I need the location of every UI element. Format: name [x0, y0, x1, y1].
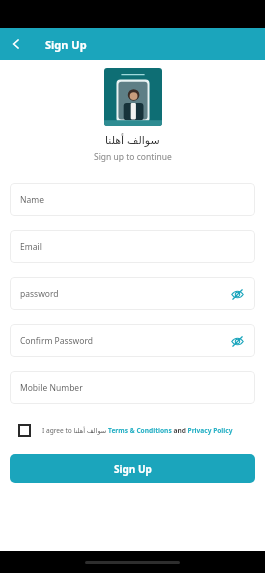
staticText: Sign Up	[45, 37, 87, 52]
button[interactable]: Agree to terms	[14, 420, 34, 440]
button[interactable]: Mobile Number	[10, 371, 255, 404]
staticText: Confirm Password	[20, 335, 93, 347]
button[interactable]: password	[10, 277, 255, 310]
staticText: Mobile Number	[20, 382, 83, 394]
staticText: password	[20, 288, 59, 300]
staticText: سوالف أهلنا	[105, 132, 160, 147]
staticText: Sign up to continue	[94, 151, 172, 163]
staticText: Name	[20, 194, 44, 206]
button[interactable]: Sign Up	[10, 454, 255, 483]
staticText: Sign Up	[114, 462, 152, 476]
button[interactable]: Email	[10, 230, 255, 263]
button[interactable]: Back	[0, 28, 32, 60]
button[interactable]: Name	[10, 183, 255, 216]
button[interactable]: Toggle password visibility	[227, 331, 247, 351]
staticText: Email	[20, 241, 42, 253]
button[interactable]: Confirm Password	[10, 324, 255, 357]
button[interactable]: I agree to سوالف أهلنا Terms & Condition…	[42, 426, 233, 435]
button[interactable]: Toggle password visibility	[227, 284, 247, 304]
